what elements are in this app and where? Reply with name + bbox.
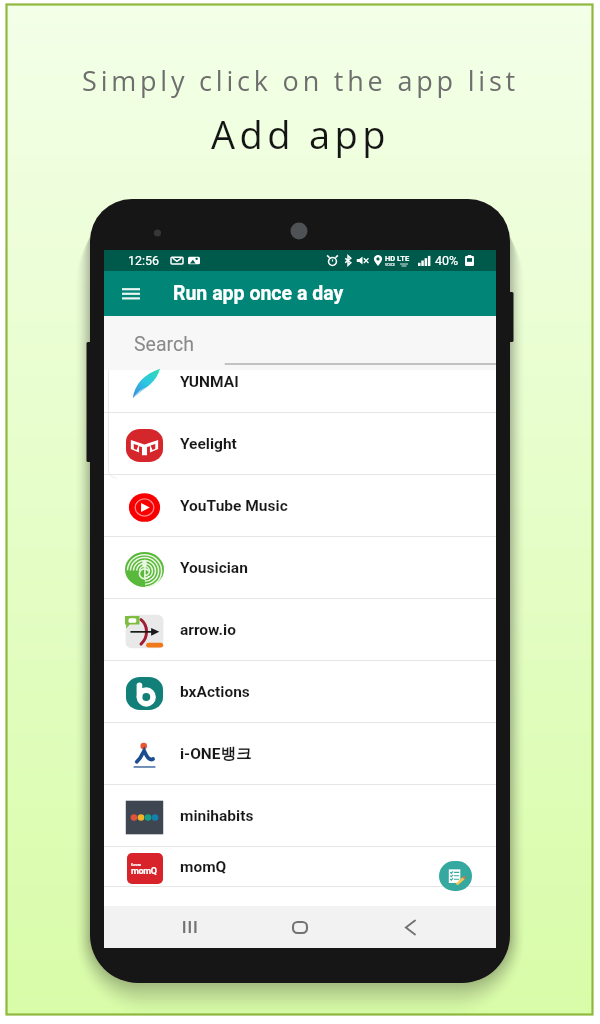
staticText: Search bbox=[134, 333, 194, 356]
staticText: momQ bbox=[180, 858, 227, 876]
button[interactable]: minihabits bbox=[104, 785, 496, 847]
staticText: momQ bbox=[131, 866, 157, 877]
button[interactable]: Open navigation menu bbox=[109, 271, 153, 316]
button[interactable]: Add app bbox=[439, 861, 472, 891]
staticText: VOICE bbox=[385, 263, 396, 267]
button[interactable]: YUNMAI bbox=[104, 351, 496, 413]
button[interactable]: i-ONE뱅크 bbox=[104, 723, 496, 785]
staticText: Yousician bbox=[180, 559, 248, 577]
staticText: Yeelight bbox=[180, 435, 237, 453]
staticText: Simply click on the app list bbox=[82, 62, 519, 99]
staticText: 12:56 bbox=[128, 253, 160, 268]
staticText: LTE bbox=[397, 254, 410, 263]
button[interactable]: Home bbox=[279, 906, 321, 948]
staticText: Korean bbox=[131, 863, 142, 867]
button[interactable]: Search bbox=[104, 316, 496, 370]
button[interactable]: Yousician bbox=[104, 537, 496, 599]
staticText: bxActions bbox=[180, 683, 250, 701]
button[interactable]: Korean bbox=[104, 847, 496, 887]
staticText: HD bbox=[385, 254, 396, 263]
button[interactable]: Yeelight bbox=[104, 413, 496, 475]
staticText: arrow.io bbox=[180, 621, 236, 639]
staticText: Add app bbox=[211, 108, 390, 160]
button[interactable]: Recent apps bbox=[169, 906, 211, 948]
button[interactable]: bxActions bbox=[104, 661, 496, 723]
staticText: YouTube Music bbox=[180, 497, 288, 515]
button[interactable]: Back bbox=[389, 906, 431, 948]
staticText: Run app once a day bbox=[173, 282, 344, 305]
staticText: 40% bbox=[435, 253, 459, 268]
button[interactable]: YouTube Music bbox=[104, 475, 496, 537]
staticText: i-ONE뱅크 bbox=[180, 744, 252, 764]
button[interactable]: arrow.io bbox=[104, 599, 496, 661]
staticText: minihabits bbox=[180, 807, 254, 825]
staticText: YUNMAI bbox=[180, 373, 239, 391]
